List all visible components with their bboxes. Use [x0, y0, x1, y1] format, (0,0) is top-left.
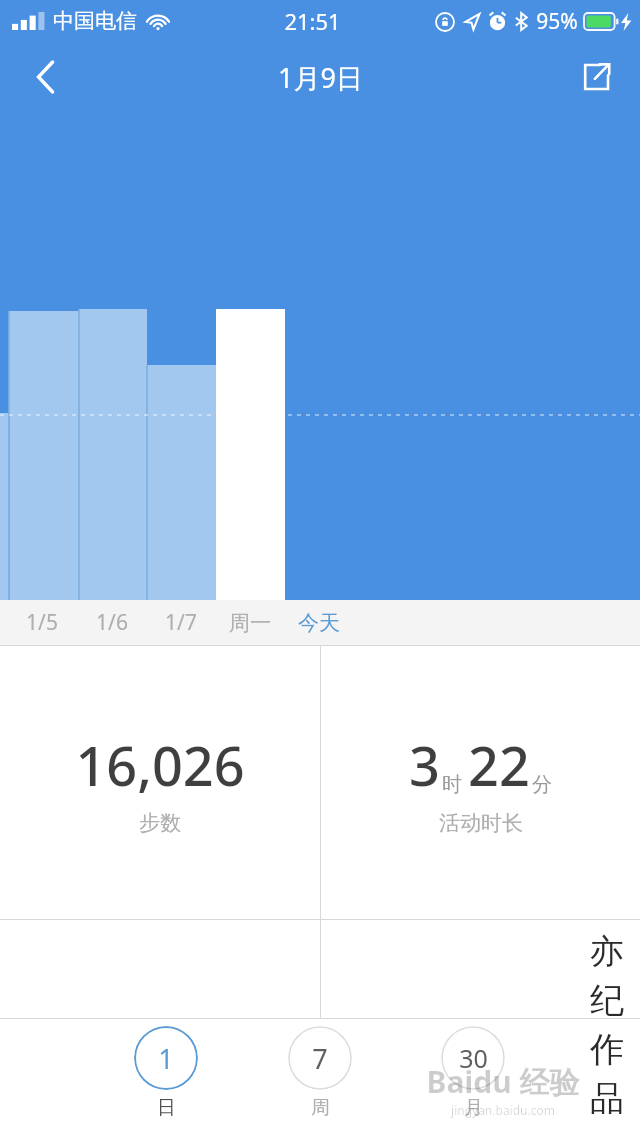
staticText: Baidu 经验: [426, 1061, 580, 1102]
staticText: 3: [409, 728, 440, 802]
button[interactable]: 今天: [285, 600, 353, 645]
staticText: 16,026: [75, 728, 245, 802]
staticText: 作: [590, 1028, 624, 1071]
button[interactable]: 7: [270, 1026, 370, 1120]
staticText: jingyan.baidu.com: [451, 1102, 555, 1118]
button[interactable]: 周一: [216, 600, 284, 645]
staticText: 时: [442, 772, 462, 797]
staticText: 21:51: [284, 6, 341, 36]
staticText: 纪: [590, 979, 624, 1022]
button[interactable]: 1/6: [78, 600, 146, 645]
button[interactable]: 3: [320, 645, 640, 919]
staticText: 1月9日: [278, 59, 363, 96]
button[interactable]: Share: [570, 51, 622, 103]
staticText: 品: [590, 1077, 624, 1120]
staticText: 今天: [298, 610, 340, 636]
staticText: 周: [311, 1096, 330, 1120]
button[interactable]: 16,026: [0, 645, 320, 919]
button[interactable]: 30: [423, 1026, 523, 1120]
button[interactable]: 1: [116, 1026, 216, 1120]
staticText: 22: [468, 728, 530, 802]
staticText: 7: [312, 1040, 328, 1077]
button[interactable]: 1/7: [147, 600, 215, 645]
button[interactable]: [0, 919, 320, 1019]
staticText: 1/6: [96, 608, 128, 637]
staticText: 亦: [590, 930, 624, 973]
staticText: 95%: [536, 7, 578, 36]
staticText: 日: [157, 1096, 176, 1120]
staticText: 步数: [139, 810, 181, 836]
staticText: 月: [464, 1096, 483, 1120]
button[interactable]: [320, 919, 640, 1019]
staticText: 1/7: [165, 608, 197, 637]
staticText: 1/5: [26, 608, 58, 637]
staticText: 1: [158, 1040, 174, 1077]
button[interactable]: 1/5: [8, 600, 76, 645]
button[interactable]: Back: [20, 51, 72, 103]
staticText: 分: [532, 772, 552, 797]
staticText: 活动时长: [439, 810, 523, 836]
staticText: 30: [459, 1041, 488, 1075]
staticText: 周一: [229, 610, 271, 636]
staticText: 中国电信: [53, 8, 137, 34]
